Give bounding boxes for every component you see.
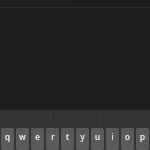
staticText: w bbox=[19, 131, 26, 142]
button[interactable]: p bbox=[136, 128, 149, 150]
button[interactable]: t bbox=[61, 128, 74, 150]
staticText: q bbox=[5, 131, 10, 142]
button[interactable]: r bbox=[46, 128, 59, 150]
staticText: i bbox=[111, 131, 114, 142]
button[interactable]: u bbox=[91, 128, 104, 150]
staticText: y bbox=[80, 131, 85, 142]
button[interactable]: y bbox=[76, 128, 89, 150]
button[interactable]: w bbox=[16, 128, 29, 150]
button[interactable]: e bbox=[31, 128, 44, 150]
button[interactable]: q bbox=[1, 128, 14, 150]
button[interactable]: o bbox=[121, 128, 134, 150]
button[interactable]: Search or type web address bbox=[0, 0, 150, 8]
button[interactable]: i bbox=[106, 128, 119, 150]
staticText: t bbox=[66, 131, 69, 142]
staticText: u bbox=[95, 131, 100, 142]
staticText: e bbox=[35, 131, 40, 142]
staticText: r bbox=[51, 131, 55, 142]
staticText: o bbox=[125, 131, 130, 142]
staticText: p bbox=[140, 131, 145, 142]
